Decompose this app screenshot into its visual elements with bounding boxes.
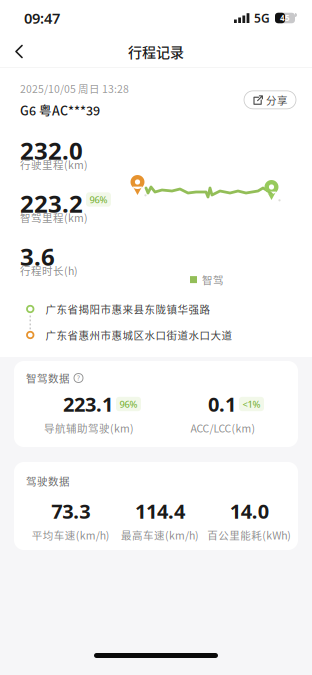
staticText: 平均车速(km/h): [32, 527, 110, 543]
staticText: 09:47: [24, 8, 60, 28]
staticText: ?: [77, 374, 80, 382]
staticText: 96%: [89, 193, 107, 206]
staticText: 智驾里程(km): [20, 210, 88, 225]
staticText: <1%: [242, 398, 260, 410]
staticText: 智驾数据: [26, 370, 70, 386]
staticText: 232.0: [20, 135, 83, 166]
staticText: 行程时长(h): [20, 263, 78, 278]
staticText: 114.4: [135, 498, 185, 524]
staticText: 45: [280, 13, 290, 23]
button[interactable]: [0, 37, 30, 65]
staticText: 行程记录: [128, 41, 184, 62]
button[interactable]: ?: [74, 373, 83, 382]
staticText: 驾驶数据: [26, 473, 70, 489]
staticText: 73.3: [51, 498, 90, 524]
staticText: 分享: [266, 92, 288, 107]
staticText: 0.1: [208, 391, 236, 417]
staticText: 2025/10/05 周日 13:28: [20, 81, 129, 96]
staticText: 5G: [254, 10, 270, 26]
staticText: 96%: [119, 398, 137, 410]
staticText: 智驾: [202, 272, 224, 287]
staticText: 223.1: [63, 391, 113, 417]
staticText: 导航辅助驾驶(km): [44, 420, 134, 436]
staticText: 百公里能耗(kWh): [207, 527, 291, 543]
staticText: 行驶里程(km): [20, 157, 88, 172]
staticText: ACC/LCC(km): [190, 420, 255, 436]
staticText: 14.0: [230, 498, 269, 524]
staticText: 广东省揭阳市惠来县东陇镇华强路: [45, 301, 210, 317]
button[interactable]: 分享: [244, 91, 296, 109]
staticText: G6 粤AC***39: [20, 101, 100, 119]
staticText: 广东省惠州市惠城区水口街道水口大道: [45, 327, 232, 343]
staticText: 最高车速(km/h): [121, 527, 199, 543]
staticText: 223.2: [20, 188, 83, 219]
staticText: 3.6: [20, 241, 55, 272]
